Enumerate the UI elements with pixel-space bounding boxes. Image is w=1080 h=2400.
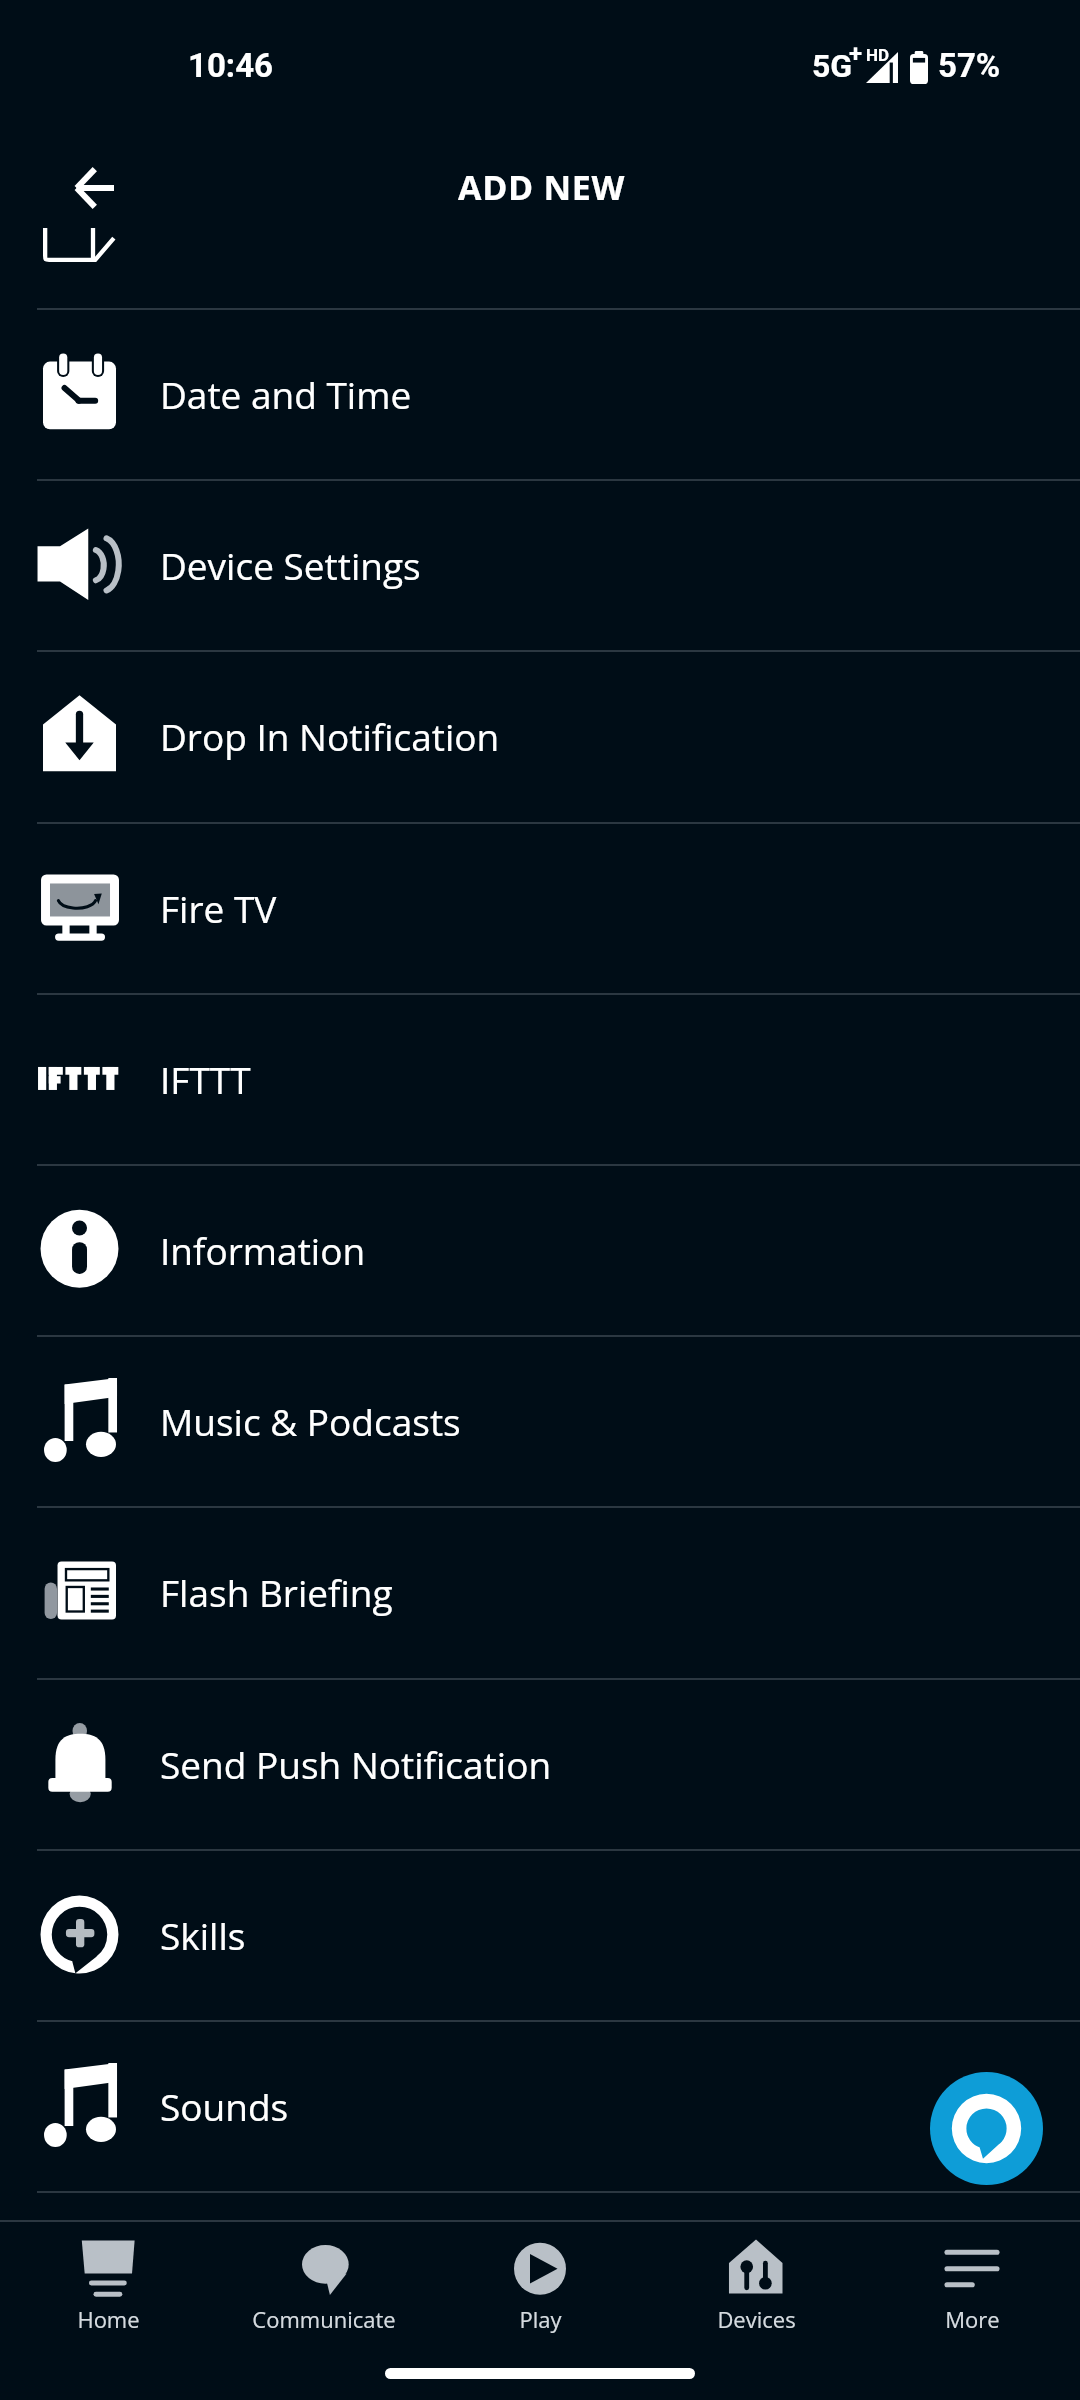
button[interactable]: Home <box>0 2222 216 2358</box>
staticText: Skills <box>160 1910 246 1960</box>
staticText: Communicate <box>252 2304 396 2334</box>
staticText: Information <box>160 1225 366 1275</box>
staticText: Date and Time <box>160 369 412 419</box>
button[interactable]: Information <box>0 1164 1080 1335</box>
staticText: 5G <box>812 47 853 85</box>
staticText: Play <box>519 2304 562 2334</box>
staticText: Device Settings <box>160 540 421 590</box>
button[interactable]: Sounds <box>0 2020 1080 2191</box>
button[interactable]: Fire TV <box>0 822 1080 993</box>
staticText: Fire TV <box>160 883 277 933</box>
button[interactable]: Device Settings <box>0 479 1080 650</box>
staticText: Devices <box>717 2304 796 2334</box>
button[interactable]: Skills <box>0 1849 1080 2020</box>
button[interactable]: Play <box>432 2222 648 2358</box>
button[interactable]: Music & Podcasts <box>0 1335 1080 1506</box>
button[interactable]: Drop In Notification <box>0 650 1080 821</box>
staticText: 57% <box>938 46 1001 85</box>
button[interactable]: Alexa <box>930 2072 1043 2185</box>
button[interactable]: Back <box>52 146 136 230</box>
staticText: ADD NEW <box>458 164 626 210</box>
button[interactable]: Devices <box>648 2222 864 2358</box>
button[interactable]: Date and Time <box>0 308 1080 479</box>
button[interactable]: More <box>864 2222 1080 2358</box>
staticText: Drop In Notification <box>160 711 500 761</box>
staticText: Sounds <box>160 2081 289 2131</box>
button[interactable]: Flash Briefing <box>0 1506 1080 1677</box>
staticText: IFTTT <box>160 1054 251 1104</box>
staticText: HD <box>866 45 890 65</box>
staticText: + <box>849 40 863 68</box>
staticText: Music & Podcasts <box>160 1396 461 1446</box>
button[interactable]: Send Push Notification <box>0 1678 1080 1849</box>
staticText: Flash Briefing <box>160 1567 393 1617</box>
staticText: 10:46 <box>188 46 274 85</box>
staticText: More <box>945 2304 1000 2334</box>
staticText: Home <box>77 2304 140 2334</box>
staticText: Send Push Notification <box>160 1739 552 1789</box>
button[interactable]: IFTTT <box>0 993 1080 1164</box>
button[interactable]: Communicate <box>216 2222 432 2358</box>
